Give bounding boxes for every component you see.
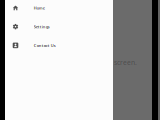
staticText: Contact Us <box>34 43 56 48</box>
staticText: Home <box>34 5 45 11</box>
staticText: This is the home screen. <box>60 58 137 67</box>
button[interactable]: Home <box>5 0 113 17</box>
staticText: Settings <box>34 24 50 29</box>
button[interactable]: Contact Us <box>5 36 113 55</box>
button[interactable]: Settings <box>5 17 113 36</box>
